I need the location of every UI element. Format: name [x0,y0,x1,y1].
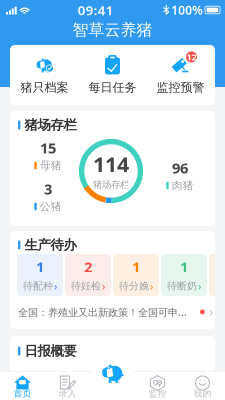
staticText: › [150,279,153,293]
staticText: 我的 [193,388,211,399]
staticText: 全国：养殖业又出新政策！全国可申报！ [18,305,192,319]
staticText: 待分娩 [119,280,149,292]
button[interactable]: 每日任务 [82,55,142,95]
button[interactable]: 1 [17,254,63,296]
staticText: 3 [44,179,52,199]
staticText: 12 [186,51,196,63]
staticText: › [54,279,57,293]
button[interactable]: 1 [161,254,207,296]
button[interactable]: 猪只档案 [14,55,74,95]
staticText: 录入 [58,388,76,399]
button[interactable]: 录入 [45,375,90,398]
staticText: 1 [180,257,188,277]
staticText: 公猪 [40,200,62,213]
staticText: 监控预警 [156,80,204,95]
staticText: 1 [36,257,44,277]
staticText: 肉猪 [172,179,194,192]
staticText: 100% [171,2,203,18]
staticText: 待配种 [23,280,53,292]
button[interactable]: 1 [209,254,225,296]
staticText: 猪只档案 [20,80,68,95]
staticText: › [198,279,201,293]
button[interactable]: 首页 [0,375,45,398]
staticText: 猪场存栏 [24,117,76,133]
staticText: 09:41 [77,1,113,19]
button[interactable]: 我的 [180,375,225,398]
staticText: 母猪 [40,159,62,172]
staticText: › [209,302,213,320]
button[interactable]: 12 [150,55,210,95]
button[interactable]: 2 [65,254,111,296]
staticText: 待妊检 [71,280,101,292]
staticText: 待断奶 [167,280,197,292]
staticText: 114 [93,150,129,179]
button[interactable]: 快速录入 [92,353,133,394]
staticText: 智草云养猪 [72,20,152,40]
staticText: 监控 [148,388,166,399]
staticText: 96 [172,158,188,178]
staticText: › [102,279,105,293]
staticText: 1 [132,257,140,277]
button[interactable]: 1 [113,254,159,296]
staticText: 日报概要 [24,343,76,359]
staticText: 15 [40,138,56,158]
staticText: 首页 [13,388,31,399]
button[interactable]: 全国：养殖业又出新政策！全国可申报！ [18,301,209,323]
staticText: 猪场存栏 [93,179,129,190]
staticText: 2 [84,257,92,277]
button[interactable]: 监控 [135,375,180,398]
staticText: 每日任务 [88,80,136,95]
staticText: 生产待办 [24,237,76,253]
